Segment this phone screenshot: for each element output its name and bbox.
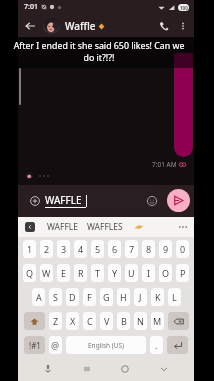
staticText: 7:01 AM — [152, 160, 177, 169]
button[interactable]: Z — [49, 312, 62, 330]
button[interactable]: Waffle — [65, 19, 105, 33]
button[interactable]: R — [74, 264, 87, 282]
staticText: 6 — [112, 243, 118, 255]
staticText: 7:01 — [24, 2, 38, 12]
button[interactable]: B — [117, 312, 130, 330]
button[interactable]: 8 — [142, 240, 155, 258]
button[interactable]: More options — [176, 220, 190, 234]
button[interactable]: 2 — [40, 240, 53, 258]
button[interactable]: WAFFLE — [22, 190, 163, 211]
button[interactable]: T — [91, 264, 104, 282]
button[interactable]: Voice input — [40, 361, 56, 377]
staticText: A — [36, 291, 42, 303]
staticText: 9 — [163, 243, 169, 255]
button[interactable]: Call — [154, 16, 174, 36]
button[interactable]: Send — [167, 189, 190, 212]
button[interactable]: Back — [156, 361, 172, 377]
button[interactable]: L — [168, 288, 181, 306]
button[interactable]: More options — [174, 17, 192, 35]
button[interactable]: V — [100, 312, 113, 330]
staticText: W — [42, 267, 51, 279]
button[interactable]: English (US) — [66, 336, 146, 354]
button[interactable]: Back — [21, 17, 39, 35]
button[interactable]: A — [32, 288, 45, 306]
button[interactable]: U — [125, 264, 138, 282]
button[interactable]: H — [117, 288, 130, 306]
staticText: 3 — [61, 243, 67, 255]
staticText: English (US) — [88, 341, 125, 350]
staticText: L — [172, 291, 177, 303]
button[interactable]: D — [66, 288, 79, 306]
button[interactable]: 5 — [91, 240, 104, 258]
button[interactable]: N — [134, 312, 147, 330]
staticText: 1 — [27, 243, 33, 255]
staticText: !#1 — [29, 340, 41, 351]
button[interactable]: Expand toolbar — [25, 222, 35, 232]
button[interactable] — [167, 336, 188, 354]
staticText: 8 — [146, 243, 152, 255]
button[interactable]: Recents — [79, 361, 95, 377]
staticText: 7 — [129, 243, 135, 255]
staticText: J — [139, 291, 142, 303]
button[interactable]: M — [151, 312, 164, 330]
button[interactable]: @ — [49, 336, 62, 354]
staticText: R — [78, 267, 84, 279]
staticText: I — [147, 267, 151, 279]
button[interactable]: Contact photo — [43, 17, 60, 34]
button[interactable]: W — [40, 264, 53, 282]
button[interactable] — [168, 312, 189, 330]
staticText: P — [180, 267, 186, 279]
staticText: O — [162, 267, 170, 279]
staticText: D — [69, 291, 76, 303]
button[interactable]: S — [49, 288, 62, 306]
staticText: After I ended it she said 650 likes! Can… — [11, 40, 187, 64]
staticText: N — [137, 315, 144, 327]
button[interactable]: C — [83, 312, 96, 330]
button[interactable] — [24, 312, 45, 330]
staticText: 2 — [44, 243, 50, 255]
button[interactable]: I — [142, 264, 155, 282]
staticText: K — [155, 291, 161, 303]
button[interactable]: . — [150, 336, 163, 354]
button[interactable]: WAFFLES — [87, 221, 123, 233]
staticText: 100 — [180, 5, 188, 11]
staticText: H — [120, 291, 127, 303]
button[interactable]: P — [176, 264, 189, 282]
staticText: Z — [53, 315, 59, 327]
staticText: @ — [51, 339, 60, 351]
button[interactable]: K — [151, 288, 164, 306]
button[interactable]: !#1 — [24, 336, 45, 354]
button[interactable]: E — [57, 264, 70, 282]
staticText: C — [87, 315, 93, 327]
button[interactable]: 7 — [125, 240, 138, 258]
button[interactable]: 0 — [176, 240, 189, 258]
staticText: E — [61, 267, 67, 279]
button[interactable]: 1 — [23, 240, 36, 258]
button[interactable]: WAFFLE — [47, 221, 78, 233]
staticText: Q — [26, 267, 34, 279]
button[interactable]: O — [159, 264, 172, 282]
button[interactable]: Q — [23, 264, 36, 282]
button[interactable]: J — [134, 288, 147, 306]
staticText: 5 — [95, 243, 101, 255]
staticText: F — [87, 291, 92, 303]
button[interactable]: 4 — [74, 240, 87, 258]
staticText: . — [155, 339, 158, 351]
button[interactable]: 6 — [108, 240, 121, 258]
button[interactable]: Y — [108, 264, 121, 282]
button[interactable]: F — [83, 288, 96, 306]
button[interactable]: Home — [117, 361, 133, 377]
staticText: T — [95, 267, 101, 279]
staticText: S — [53, 291, 58, 303]
button[interactable]: 3 — [57, 240, 70, 258]
button[interactable]: G — [100, 288, 113, 306]
staticText: X — [70, 315, 76, 327]
staticText: Waffle — [65, 19, 96, 33]
staticText: B — [121, 315, 127, 327]
staticText: WAFFLE — [45, 193, 82, 207]
staticText: G — [103, 291, 110, 303]
staticText: V — [104, 315, 110, 327]
button[interactable]: 9 — [159, 240, 172, 258]
button[interactable]: X — [66, 312, 79, 330]
staticText: Y — [112, 267, 118, 279]
